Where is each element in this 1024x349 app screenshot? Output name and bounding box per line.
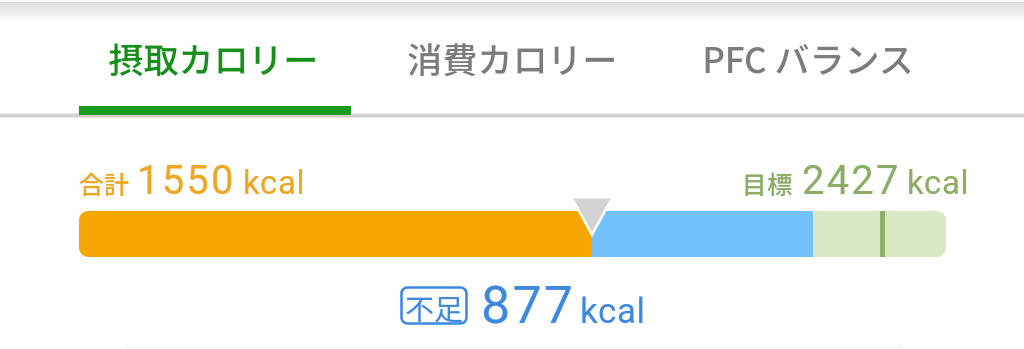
staticText: 不足 [405,286,464,325]
staticText: 877 [481,275,576,336]
staticText: PFC バランス [702,32,914,83]
staticText: 摂取カロリー [108,32,319,83]
staticText: 目標 [742,165,793,201]
button[interactable]: PFC バランス [658,0,958,114]
staticText: 消費カロリー [407,32,618,83]
button[interactable]: 摂取カロリー [63,0,363,114]
staticText: kcal [580,291,646,332]
staticText: kcal [243,163,306,202]
staticText: 1550 [137,157,236,204]
button[interactable]: 消費カロリー [362,0,662,114]
staticText: 2427 [802,157,901,204]
other: 現在値マーカー [570,195,614,237]
staticText: 合計 [79,165,130,201]
staticText: kcal [907,163,970,202]
